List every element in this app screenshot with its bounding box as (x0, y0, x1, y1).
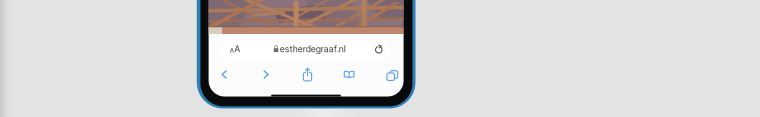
staticText: A (234, 44, 240, 54)
staticText: estherdegraaf.nl (280, 44, 346, 54)
staticText: A (230, 47, 234, 54)
button[interactable]: Back (203, 64, 245, 85)
button[interactable]: Tabs (370, 64, 411, 85)
button[interactable]: Forward (245, 64, 287, 85)
button[interactable]: Page settings (223, 39, 247, 59)
button[interactable]: Share (287, 64, 328, 85)
button[interactable]: Bookmarks (328, 64, 370, 85)
button[interactable]: Reload (370, 39, 388, 59)
